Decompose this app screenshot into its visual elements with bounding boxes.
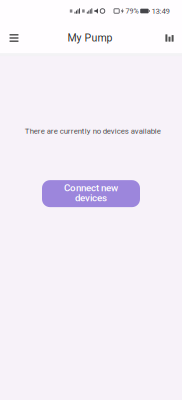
button[interactable]: Menu <box>0 19 27 56</box>
staticText: 13:49 <box>151 6 169 16</box>
button[interactable]: Connect new devices <box>42 180 140 207</box>
staticText: There are currently no devices available <box>25 126 161 136</box>
staticText: 79% <box>126 7 139 15</box>
button[interactable]: Statistics <box>154 19 181 56</box>
staticText: Connect new <box>64 182 118 194</box>
staticText: My Pump <box>67 32 112 44</box>
staticText: devices <box>75 192 107 203</box>
